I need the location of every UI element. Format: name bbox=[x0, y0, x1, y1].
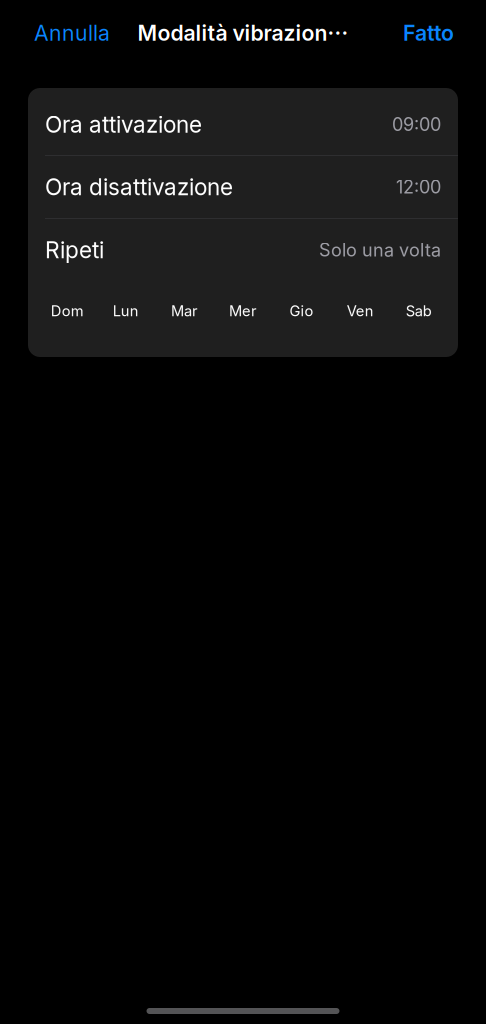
staticText: Mar bbox=[171, 302, 198, 320]
staticText: Gio bbox=[290, 302, 314, 320]
staticText: Fatto bbox=[403, 20, 454, 46]
button[interactable]: Sab bbox=[389, 288, 448, 334]
staticText: Ven bbox=[347, 302, 374, 320]
button[interactable]: Mar bbox=[155, 288, 214, 334]
button[interactable]: Ora attivazione bbox=[28, 88, 458, 155]
staticText: Ora attivazione bbox=[45, 111, 202, 138]
button[interactable]: Annulla bbox=[24, 11, 120, 55]
staticText: Ripeti bbox=[45, 236, 104, 264]
staticText: 09:00 bbox=[392, 114, 441, 135]
staticText: Solo una volta bbox=[319, 239, 441, 261]
staticText: 12:00 bbox=[396, 176, 441, 198]
button[interactable]: Mer bbox=[214, 288, 272, 334]
staticText: Dom bbox=[51, 302, 84, 320]
staticText: Lun bbox=[113, 302, 139, 320]
button[interactable]: Lun bbox=[97, 288, 155, 334]
button[interactable]: Ven bbox=[331, 288, 389, 334]
button[interactable]: Fatto bbox=[393, 11, 464, 55]
button[interactable]: Dom bbox=[38, 288, 97, 334]
staticText: Ora disattivazione bbox=[45, 173, 233, 201]
button[interactable]: Ora disattivazione bbox=[28, 156, 458, 218]
staticText: Annulla bbox=[34, 20, 110, 46]
staticText: Sab bbox=[406, 302, 432, 320]
button[interactable]: Gio bbox=[272, 288, 331, 334]
button[interactable]: Ripeti bbox=[28, 219, 458, 281]
staticText: Modalità vibrazion··· bbox=[137, 20, 348, 46]
staticText: Mer bbox=[229, 302, 257, 320]
